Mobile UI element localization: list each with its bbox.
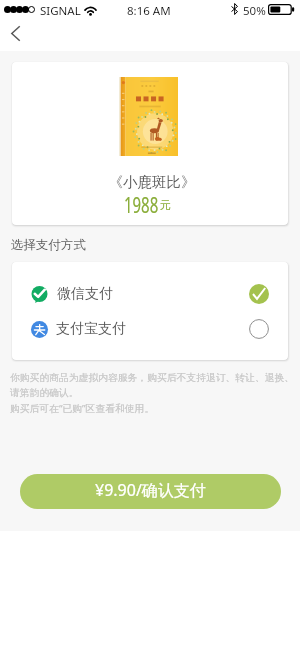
button[interactable]: 支付宝支付 [12,312,288,346]
staticText: 请第韵的确认。 [10,387,79,399]
button[interactable]: ¥9.90/确认支付 [20,474,281,509]
staticText: 50% [243,3,266,19]
staticText: 《小鹿斑比》 [14,173,288,191]
staticText: 选择支付方式 [11,237,86,253]
staticText: 元 [160,198,171,212]
staticText: SIGNAL [40,3,81,19]
staticText: 8:16 AM [127,3,171,19]
staticText: 支付宝支付 [56,320,126,338]
staticText: 1988 [124,189,159,219]
staticText: 微信支付 [57,285,113,303]
staticText: ¥9.90/确认支付 [95,479,206,501]
staticText: 你购买的商品为虚拟内容服务，购买后不支持退订、转让、退换、 [10,372,295,384]
button[interactable]: 微信支付 [12,277,288,311]
button[interactable]: Back [4,21,29,46]
staticText: 购买后可在“已购”区查看和使用。 [10,402,155,415]
